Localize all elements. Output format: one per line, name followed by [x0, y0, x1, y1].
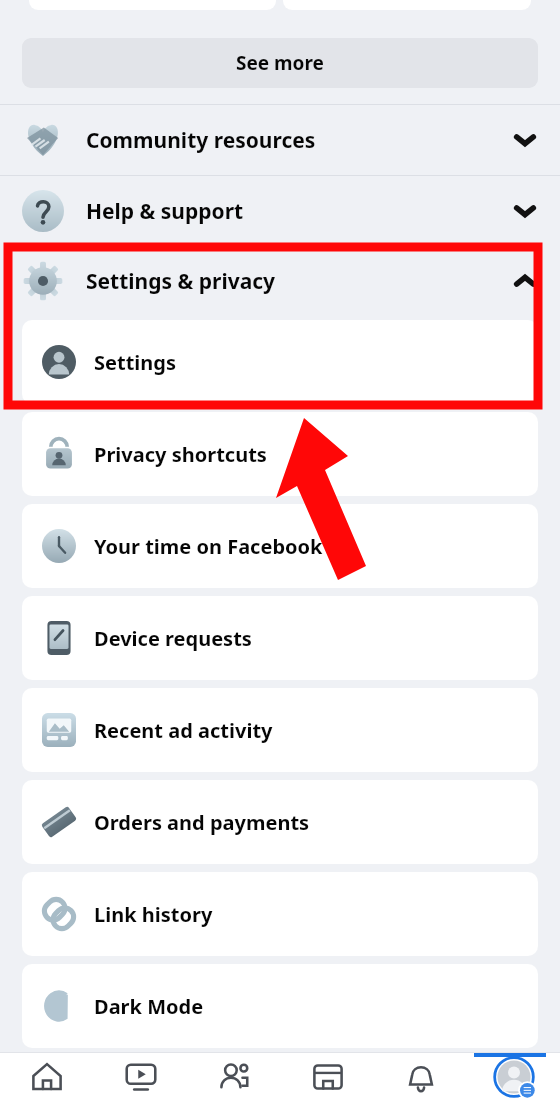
button[interactable]: Video [94, 1053, 188, 1100]
button[interactable]: Recent ad activity [22, 688, 538, 772]
button[interactable]: Community resources [0, 105, 560, 175]
staticText: Settings & privacy [86, 267, 276, 296]
button[interactable]: Settings [22, 320, 538, 404]
button[interactable]: Marketplace [281, 1053, 374, 1100]
button[interactable]: Friends [188, 1053, 281, 1100]
button[interactable]: Your time on Facebook [22, 504, 538, 588]
staticText: Dark Mode [94, 993, 204, 1020]
button[interactable]: Privacy shortcuts [22, 412, 538, 496]
staticText: Your time on Facebook [94, 533, 323, 560]
button[interactable]: See more [22, 38, 538, 88]
button[interactable]: Menu [467, 1053, 560, 1100]
button[interactable]: Help & support [0, 176, 560, 246]
staticText: See more [236, 50, 324, 76]
button[interactable]: Device requests [22, 596, 538, 680]
button[interactable]: Dark Mode [22, 964, 538, 1048]
staticText: Link history [94, 901, 213, 928]
button[interactable]: Home [0, 1053, 94, 1100]
button[interactable]: Notifications [374, 1053, 467, 1100]
staticText: Privacy shortcuts [94, 441, 267, 468]
button[interactable]: Orders and payments [22, 780, 538, 864]
staticText: Device requests [94, 625, 252, 652]
staticText: Recent ad activity [94, 717, 273, 744]
button[interactable]: Link history [22, 872, 538, 956]
staticText: Community resources [86, 126, 316, 155]
staticText: Help & support [86, 197, 244, 226]
staticText: Orders and payments [94, 809, 310, 836]
button[interactable]: Settings & privacy [0, 246, 560, 316]
staticText: Settings [94, 349, 176, 376]
